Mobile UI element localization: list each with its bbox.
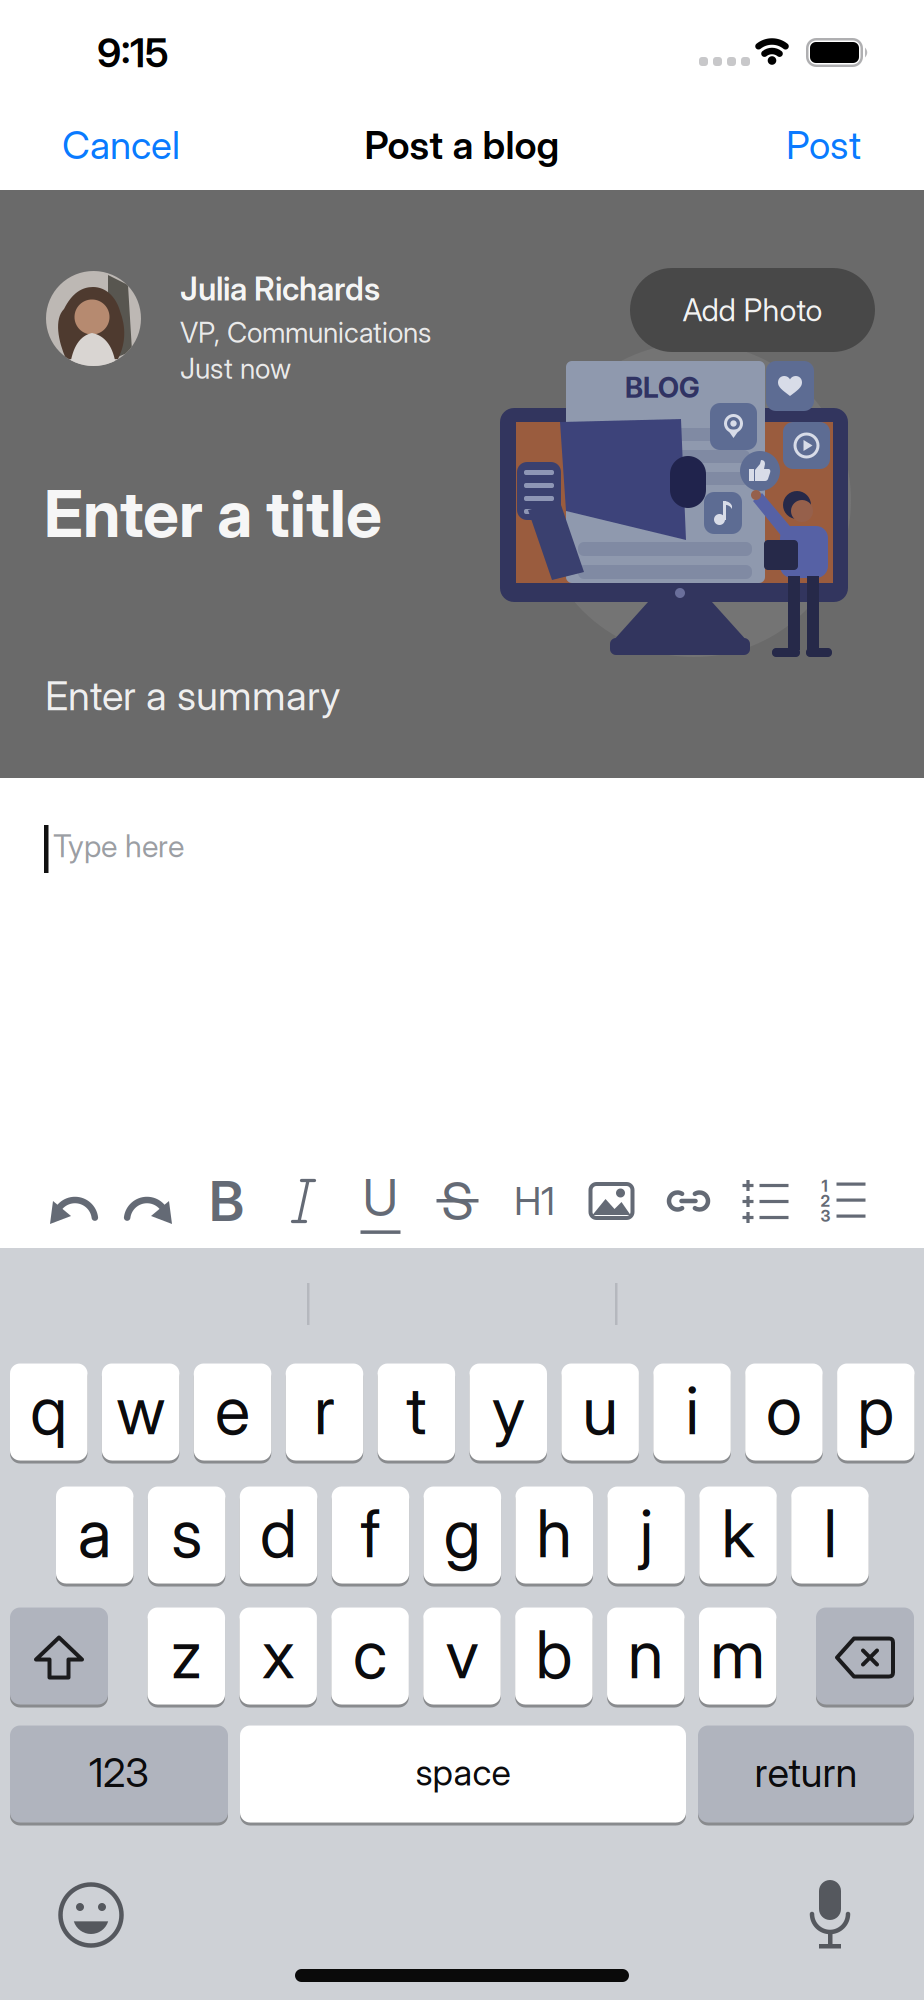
staticText: Just now xyxy=(180,352,291,385)
button[interactable]: Strikethrough xyxy=(419,1158,496,1244)
staticText: 1 xyxy=(821,1176,827,1195)
staticText: n xyxy=(628,1616,664,1693)
staticText: Post a blog xyxy=(364,122,559,168)
staticText: Add Photo xyxy=(682,292,822,328)
button[interactable]: Insert link xyxy=(650,1158,727,1244)
staticText: p xyxy=(857,1372,894,1449)
button[interactable]: Shift xyxy=(10,1609,108,1706)
button[interactable]: f xyxy=(332,1488,409,1585)
button[interactable]: l xyxy=(791,1488,869,1585)
button[interactable]: Insert image xyxy=(573,1158,650,1244)
button[interactable]: n xyxy=(607,1609,684,1706)
staticText: z xyxy=(171,1616,202,1693)
staticText: H1 xyxy=(514,1178,555,1224)
button[interactable]: Add Photo xyxy=(630,268,875,352)
staticText: l xyxy=(823,1495,836,1572)
staticText: B xyxy=(209,1169,244,1233)
button[interactable]: Redo xyxy=(111,1158,188,1244)
button[interactable]: Dictation xyxy=(808,1880,852,1950)
button[interactable]: x xyxy=(239,1609,317,1706)
button[interactable]: h xyxy=(515,1488,593,1585)
staticText: t xyxy=(406,1372,426,1449)
staticText: 9:15 xyxy=(97,29,169,76)
button[interactable]: m xyxy=(699,1609,776,1706)
staticText: BLOG xyxy=(625,371,700,404)
staticText: g xyxy=(444,1495,481,1572)
staticText: m xyxy=(710,1616,765,1693)
button[interactable]: d xyxy=(240,1488,317,1585)
button[interactable]: Enter a title xyxy=(44,476,382,551)
staticText: o xyxy=(766,1372,802,1449)
staticText: u xyxy=(582,1372,618,1449)
staticText: Enter a title xyxy=(44,476,382,551)
button[interactable]: i xyxy=(653,1365,731,1462)
staticText: k xyxy=(721,1495,754,1572)
button[interactable]: a xyxy=(56,1488,133,1585)
staticText: Cancel xyxy=(62,122,180,168)
staticText: r xyxy=(314,1372,335,1449)
staticText: Type here xyxy=(53,828,184,864)
staticText: Enter a summary xyxy=(45,672,340,719)
staticText: s xyxy=(171,1495,202,1572)
button[interactable]: r xyxy=(286,1365,363,1462)
staticText: x xyxy=(262,1616,295,1693)
staticText: c xyxy=(353,1616,387,1693)
button[interactable]: 123 xyxy=(10,1727,228,1824)
button[interactable]: t xyxy=(378,1365,455,1462)
staticText: j xyxy=(640,1495,653,1572)
staticText: return xyxy=(754,1749,857,1796)
button[interactable]: v xyxy=(423,1609,501,1706)
button[interactable]: y xyxy=(469,1365,547,1462)
button[interactable]: Bold xyxy=(188,1158,265,1244)
staticText: 3 xyxy=(820,1206,830,1225)
button[interactable]: Cancel xyxy=(62,122,180,168)
button[interactable]: k xyxy=(699,1488,777,1585)
staticText: i xyxy=(685,1372,698,1449)
button[interactable]: p xyxy=(837,1365,915,1462)
staticText: VP, Communications xyxy=(180,316,431,349)
button[interactable]: e xyxy=(194,1365,271,1462)
staticText: space xyxy=(415,1751,510,1794)
button[interactable]: s xyxy=(148,1488,225,1585)
staticText: Post xyxy=(786,122,861,168)
staticText: h xyxy=(536,1495,572,1572)
button[interactable]: Type here xyxy=(53,828,184,864)
button[interactable]: Delete xyxy=(816,1609,914,1706)
staticText: e xyxy=(215,1372,250,1449)
button[interactable]: w xyxy=(102,1365,179,1462)
button[interactable]: Enter a summary xyxy=(45,672,340,719)
button[interactable]: Italic xyxy=(265,1158,342,1244)
button[interactable]: g xyxy=(424,1488,501,1585)
button[interactable]: Underline xyxy=(342,1158,419,1244)
button[interactable]: Bulleted list xyxy=(727,1158,804,1244)
staticText: S xyxy=(441,1170,473,1232)
staticText: q xyxy=(30,1372,67,1449)
staticText: f xyxy=(360,1495,380,1572)
button[interactable]: Emoji xyxy=(58,1882,124,1948)
staticText: Julia Richards xyxy=(180,270,380,308)
button[interactable]: j xyxy=(607,1488,685,1585)
staticText: 123 xyxy=(89,1749,149,1796)
button[interactable]: return xyxy=(698,1727,914,1824)
staticText: b xyxy=(535,1616,572,1693)
button[interactable]: b xyxy=(515,1609,593,1706)
staticText: d xyxy=(260,1495,297,1572)
button[interactable]: Numbered list xyxy=(804,1158,881,1244)
button[interactable]: o xyxy=(745,1365,823,1462)
button[interactable]: q xyxy=(10,1365,87,1462)
staticText: a xyxy=(78,1495,112,1572)
button[interactable]: u xyxy=(561,1365,639,1462)
button[interactable]: space xyxy=(240,1727,686,1824)
staticText: U xyxy=(362,1168,398,1227)
button[interactable]: Post xyxy=(786,122,861,168)
staticText: w xyxy=(116,1372,165,1449)
button[interactable]: z xyxy=(148,1609,225,1706)
button[interactable]: Undo xyxy=(34,1158,111,1244)
button[interactable]: Heading xyxy=(496,1158,573,1244)
staticText: 2 xyxy=(820,1191,830,1210)
button[interactable]: c xyxy=(331,1609,409,1706)
staticText: y xyxy=(492,1372,525,1449)
staticText: v xyxy=(445,1616,478,1693)
